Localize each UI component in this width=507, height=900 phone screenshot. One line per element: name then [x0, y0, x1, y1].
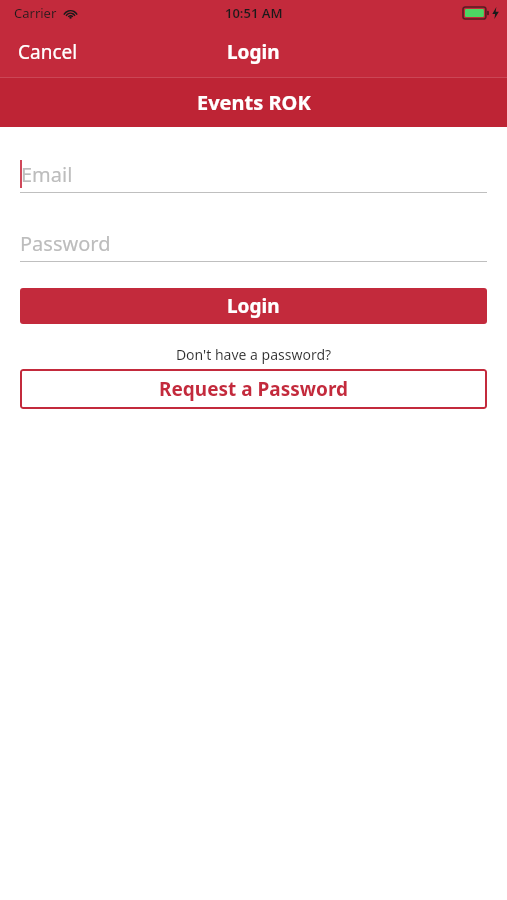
staticText: Cancel	[18, 39, 78, 65]
button[interactable]: Password	[20, 229, 487, 262]
staticText: 10:51 AM	[225, 4, 283, 22]
button[interactable]: Login	[20, 288, 487, 324]
staticText: Login	[227, 293, 280, 319]
button[interactable]: Email	[20, 160, 487, 193]
button[interactable]: Request a Password	[20, 369, 487, 409]
button[interactable]: Cancel	[0, 29, 96, 75]
staticText: Events ROK	[197, 89, 311, 116]
staticText: Login	[227, 39, 280, 65]
staticText: Request a Password	[159, 376, 349, 402]
staticText: Don't have a password?	[0, 345, 507, 364]
staticText: Carrier	[14, 4, 57, 22]
staticText: Email	[21, 161, 73, 188]
staticText: Password	[20, 230, 111, 257]
